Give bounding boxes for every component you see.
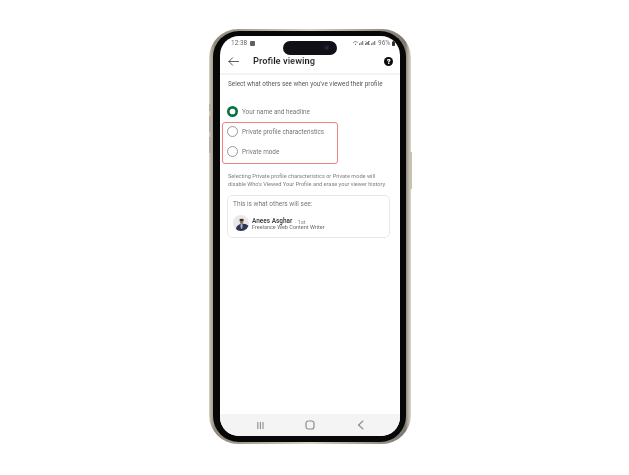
button[interactable]: Private mode <box>225 146 337 157</box>
button[interactable]: Back <box>227 55 239 67</box>
staticText: 12:38 <box>231 39 248 47</box>
staticText: Private mode <box>242 148 280 155</box>
button[interactable]: Your name and headline <box>220 103 400 119</box>
button[interactable]: Home <box>300 415 320 435</box>
button[interactable]: Recents <box>250 415 270 435</box>
staticText: Profile viewing <box>253 55 315 66</box>
staticText: 96% <box>378 39 391 47</box>
staticText: · 1st <box>295 219 306 225</box>
staticText: Selecting Private profile characteristic… <box>228 173 376 180</box>
button[interactable]: Help <box>381 54 395 68</box>
staticText: Select what others see when you've viewe… <box>228 80 383 87</box>
staticText: Private profile characteristics <box>242 128 325 135</box>
button[interactable]: Back <box>350 415 370 435</box>
staticText: Your name and headline <box>242 108 310 115</box>
staticText: This is what others will see: <box>233 200 313 208</box>
staticText: ? <box>387 58 391 66</box>
staticText: Anees Asghar <box>252 217 293 225</box>
staticText: disable Who's Viewed Your Profile and er… <box>228 181 387 188</box>
button[interactable]: Private profile characteristics <box>225 126 337 137</box>
staticText: Freelance Web Content Writer <box>252 224 325 230</box>
